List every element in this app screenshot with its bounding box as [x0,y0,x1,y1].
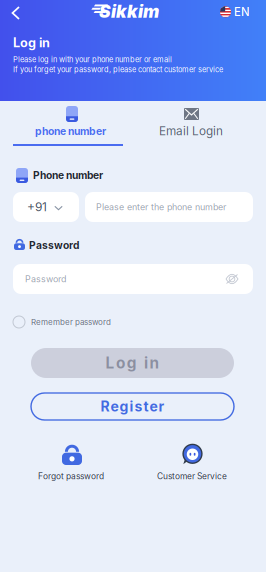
staticText: If you forget your password, please cont… [13,65,223,74]
button[interactable]: Password [13,264,253,294]
button[interactable]: phone number [0,101,133,149]
button[interactable]: Forgot password [22,443,122,483]
staticText: Log in [13,35,50,50]
button[interactable]: Register [31,393,234,420]
button[interactable]: Customer Service [143,443,243,483]
staticText: phone number [35,125,106,138]
button[interactable]: Please enter the phone number [85,192,253,222]
staticText: EN [234,5,250,19]
staticText: Forgot password [38,471,104,481]
button[interactable]: Back [6,3,26,23]
staticText: Log in [105,354,159,372]
staticText: Sikkim [99,1,159,22]
staticText: Please log in with your phone number or … [13,55,172,64]
staticText: Phone number [33,169,103,181]
button[interactable]: Language English [220,5,250,19]
staticText: Password [25,274,66,284]
button[interactable]: Remember password [13,315,111,329]
staticText: Please enter the phone number [96,202,226,212]
staticText: Password [29,239,79,251]
button[interactable]: Log in [31,348,234,378]
staticText: +91 [27,200,47,214]
staticText: Customer Service [157,471,227,481]
button[interactable]: +91 [13,192,79,222]
staticText: Email Login [159,124,223,138]
button[interactable]: Email Login [133,101,266,149]
staticText: Register [100,398,164,415]
staticText: Remember password [31,317,111,327]
